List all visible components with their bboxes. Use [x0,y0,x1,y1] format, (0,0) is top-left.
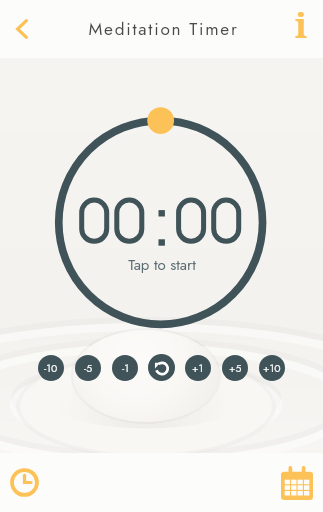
staticText: -10 [44,361,58,376]
staticText: Meditation Timer [46,17,281,42]
button[interactable]: -1 [112,355,138,381]
button[interactable]: +1 [185,355,211,381]
button[interactable]: -10 [38,355,64,381]
staticText: +10 [263,361,281,376]
staticText: -5 [84,361,93,376]
button[interactable]: Calendar [271,453,323,512]
staticText: i [295,2,307,48]
staticText: +5 [229,361,242,376]
button[interactable]: Reset [148,354,175,381]
button[interactable]: Start timer [40,101,282,343]
button[interactable]: -5 [75,355,101,381]
staticText: +1 [192,361,204,376]
button[interactable]: Back [0,0,44,58]
button[interactable]: Info [279,0,323,58]
button[interactable]: +10 [259,355,285,381]
button[interactable]: +5 [222,355,248,381]
staticText: -1 [122,361,129,376]
button[interactable]: Timer [0,453,48,512]
staticText: Tap to start [41,254,283,276]
